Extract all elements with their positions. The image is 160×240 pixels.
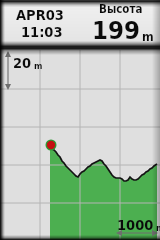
staticText: m (142, 29, 154, 44)
button[interactable]: APR03 (0, 0, 79, 45)
staticText: m (156, 223, 160, 233)
staticText: APR03 (16, 7, 64, 24)
staticText: 199 (92, 15, 140, 45)
staticText: 1000 (117, 217, 154, 234)
staticText: m (34, 61, 43, 71)
staticText: 11:03 (21, 24, 63, 41)
staticText: 20 (13, 55, 32, 72)
button[interactable]: Высота (79, 0, 160, 45)
staticText: Высота (99, 2, 143, 15)
